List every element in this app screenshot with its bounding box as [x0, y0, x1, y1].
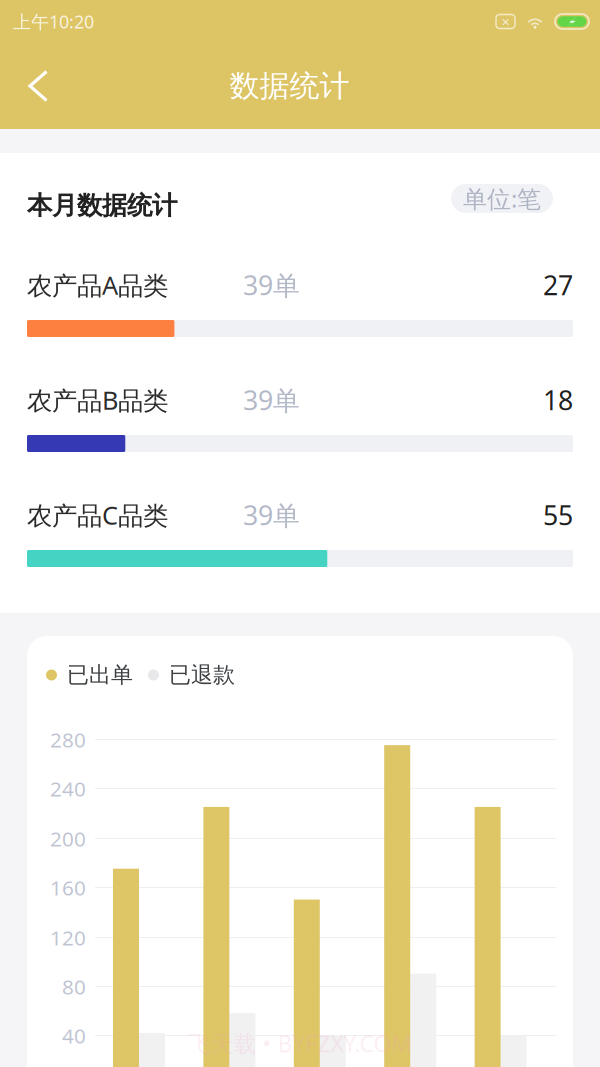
staticText: 39单 — [243, 497, 300, 533]
staticText: × — [501, 11, 509, 31]
staticText: 80 — [62, 972, 86, 1000]
staticText: 单位:笔 — [463, 182, 541, 215]
staticText: 200 — [50, 824, 86, 852]
staticText: 农产品B品类 — [27, 383, 168, 417]
button[interactable]: 返回 — [0, 56, 66, 116]
staticText: 本月数据统计 — [27, 189, 177, 221]
staticText: 40 — [62, 1021, 86, 1049]
staticText: 农产品C品类 — [27, 498, 168, 532]
staticText: 数据统计 — [229, 67, 349, 105]
staticText: 120 — [50, 923, 86, 951]
staticText: 上午10:20 — [13, 9, 94, 34]
staticText: 55 — [543, 497, 573, 533]
staticText: 280 — [50, 725, 86, 753]
staticText: 39单 — [243, 267, 300, 303]
staticText: 27 — [543, 267, 573, 303]
staticText: 农产品A品类 — [27, 268, 168, 302]
staticText: 240 — [50, 774, 86, 802]
staticText: 已出单 — [67, 661, 133, 689]
staticText: 39单 — [243, 382, 300, 418]
staticText: 160 — [50, 873, 86, 901]
staticText: 已退款 — [169, 661, 235, 689]
staticText: 飞天载 • BYFZXY.COM — [187, 1028, 412, 1059]
staticText: 18 — [543, 382, 573, 418]
